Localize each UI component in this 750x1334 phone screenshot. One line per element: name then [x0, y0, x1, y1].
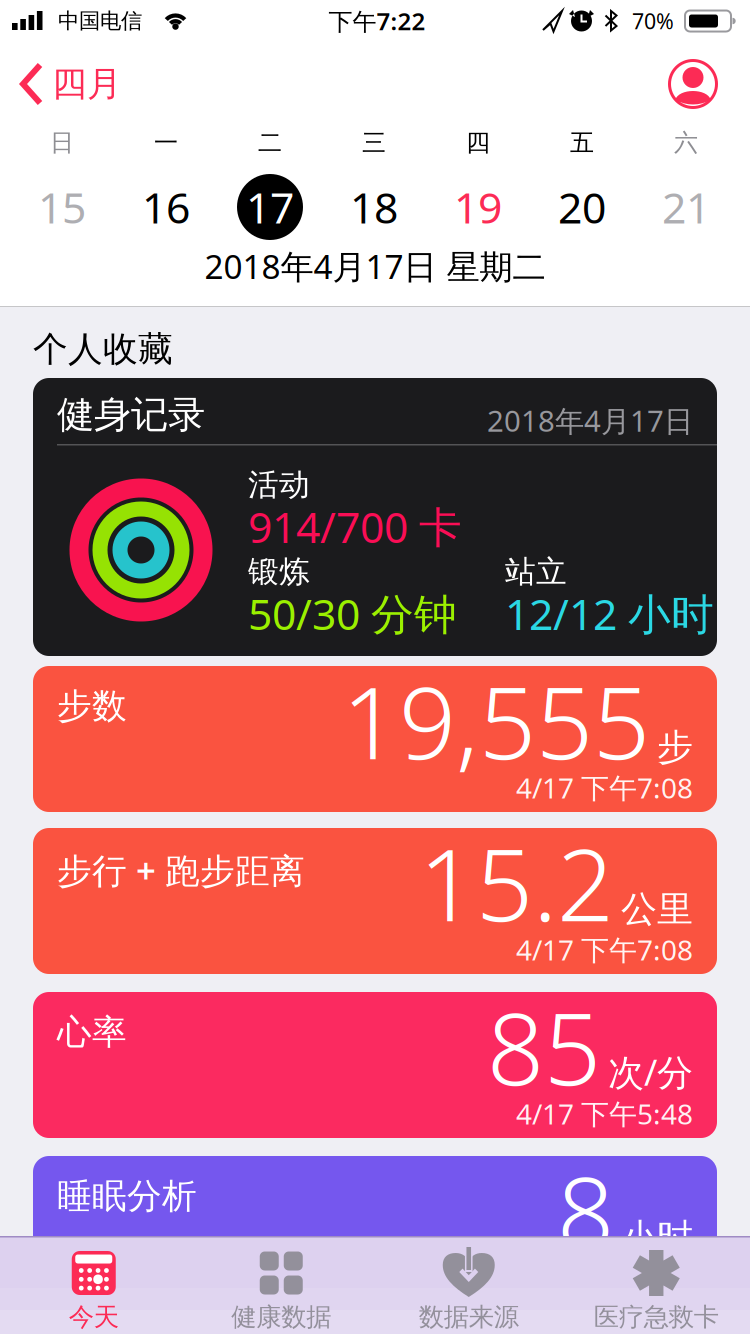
staticText: 今天 — [69, 1301, 119, 1332]
staticText: 2018年4月17日 星期二 — [204, 244, 545, 288]
staticText: 50/30 分钟 — [248, 585, 457, 642]
staticText: 数据来源 — [419, 1301, 519, 1332]
button[interactable]: 步数 — [33, 666, 717, 812]
staticText: 健康数据 — [231, 1301, 331, 1332]
button[interactable]: 心率 — [33, 992, 717, 1138]
button[interactable]: 健康数据 — [187, 1237, 375, 1334]
staticText: 三 — [362, 128, 386, 157]
staticText: 四月 — [52, 63, 122, 105]
staticText: 914/700 卡 — [248, 498, 462, 555]
staticText: 15 — [38, 179, 86, 235]
button[interactable]: 18 — [322, 171, 426, 243]
staticText: 16 — [142, 179, 190, 235]
staticText: 六 — [674, 128, 698, 157]
button[interactable]: 15 — [10, 171, 114, 243]
staticText: 85 — [487, 980, 601, 1113]
staticText: 站立 — [505, 553, 567, 591]
staticText: 4/17 下午7:08 — [516, 931, 693, 968]
staticText: 公里 — [621, 887, 693, 931]
staticText: 日 — [50, 128, 74, 157]
staticText: 健身记录 — [57, 392, 205, 438]
staticText: 70% — [632, 7, 674, 35]
staticText: 2018年4月17日 — [487, 401, 693, 440]
staticText: 二 — [258, 128, 282, 157]
staticText: 20 — [558, 179, 606, 235]
staticText: 15.2 — [419, 816, 614, 949]
staticText: 步行 + 跑步距离 — [57, 847, 305, 893]
staticText: 17 — [246, 179, 294, 235]
staticText: 下午7:22 — [328, 5, 425, 37]
staticText: 21 — [662, 179, 710, 235]
button[interactable]: 返回四月 — [20, 60, 122, 108]
button[interactable]: 医疗急救卡 — [562, 1237, 750, 1334]
button[interactable]: 16 — [114, 171, 218, 243]
staticText: 4/17 下午7:08 — [516, 769, 693, 806]
button[interactable]: 19 — [426, 171, 530, 243]
button[interactable]: 20 — [530, 171, 634, 243]
button[interactable]: 步行 + 跑步距离 — [33, 828, 717, 974]
staticText: 步数 — [57, 685, 127, 728]
button[interactable]: 睡眠分析 — [33, 1156, 717, 1302]
staticText: 活动 — [248, 466, 310, 504]
staticText: 五 — [570, 128, 594, 157]
staticText: 心率 — [57, 1011, 127, 1054]
button[interactable]: 今天 — [0, 1237, 187, 1334]
staticText: 步 — [657, 725, 693, 769]
staticText: 19 — [454, 179, 502, 235]
button[interactable]: 个人资料 — [668, 59, 718, 109]
button[interactable]: 21 — [634, 171, 738, 243]
button[interactable]: 健身记录 — [33, 378, 717, 656]
staticText: 8 — [557, 1144, 614, 1277]
staticText: 19,555 — [342, 654, 650, 787]
staticText: 四 — [466, 128, 490, 157]
staticText: 次/分 — [608, 1048, 693, 1096]
staticText: 睡眠分析 — [57, 1175, 197, 1218]
staticText: 中国电信 — [58, 8, 142, 34]
staticText: 18 — [350, 179, 398, 235]
staticText: 12/12 小时 — [505, 585, 714, 642]
staticText: 4/17 下午5:48 — [516, 1095, 693, 1132]
staticText: 医疗急救卡 — [594, 1301, 719, 1332]
staticText: 锻炼 — [248, 553, 310, 591]
staticText: 个人收藏 — [33, 328, 173, 371]
staticText: 小时 — [621, 1215, 693, 1259]
staticText: 一 — [154, 128, 178, 157]
button[interactable]: 数据来源 — [375, 1237, 562, 1334]
button[interactable]: 17 — [218, 171, 322, 243]
